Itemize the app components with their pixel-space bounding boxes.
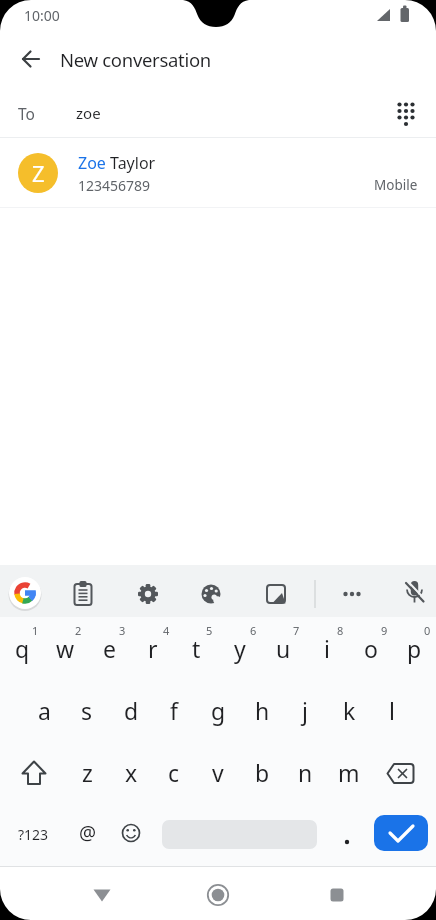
staticText: d bbox=[124, 695, 139, 726]
staticText: v bbox=[212, 757, 224, 788]
staticText: 10:00 bbox=[24, 6, 60, 25]
staticText: f bbox=[170, 695, 178, 726]
staticText: i bbox=[324, 633, 330, 664]
staticText: 8 bbox=[337, 623, 344, 638]
staticText: q bbox=[15, 633, 30, 664]
staticText: r bbox=[148, 633, 158, 664]
staticText: k bbox=[343, 695, 356, 726]
staticText: 2 bbox=[75, 623, 82, 638]
staticText: Z bbox=[32, 158, 45, 188]
staticText: 9 bbox=[381, 623, 388, 638]
staticText: 0 bbox=[424, 623, 431, 638]
staticText: 7 bbox=[293, 623, 300, 638]
staticText: 1 bbox=[32, 623, 39, 638]
staticText: a bbox=[38, 695, 51, 726]
staticText: @ bbox=[79, 820, 97, 846]
staticText: n bbox=[298, 757, 313, 788]
staticText: s bbox=[81, 695, 93, 726]
staticText: w bbox=[56, 633, 75, 664]
staticText: e bbox=[103, 633, 116, 664]
staticText: 4 bbox=[163, 623, 170, 638]
staticText: y bbox=[234, 633, 246, 664]
staticText: u bbox=[276, 633, 291, 664]
staticText: 5 bbox=[206, 623, 213, 638]
staticText: h bbox=[255, 695, 270, 726]
staticText: x bbox=[125, 757, 138, 788]
staticText: New conversation bbox=[60, 47, 211, 72]
staticText: 3 bbox=[119, 623, 126, 638]
staticText: b bbox=[255, 757, 270, 788]
staticText: o bbox=[364, 633, 378, 664]
staticText: p bbox=[407, 633, 422, 664]
staticText: j bbox=[302, 695, 308, 726]
staticText: Zoe Taylor bbox=[78, 152, 156, 174]
staticText: l bbox=[389, 695, 395, 726]
staticText: c bbox=[168, 757, 180, 788]
staticText: ?123 bbox=[18, 825, 49, 844]
staticText: m bbox=[338, 757, 360, 788]
staticText: zoe bbox=[76, 103, 101, 123]
staticText: 123456789 bbox=[78, 176, 151, 195]
staticText: Mobile bbox=[374, 176, 418, 194]
staticText: z bbox=[82, 757, 93, 788]
staticText: t bbox=[192, 633, 201, 664]
staticText: 6 bbox=[250, 623, 257, 638]
staticText: g bbox=[211, 695, 226, 726]
staticText: To bbox=[18, 103, 35, 124]
